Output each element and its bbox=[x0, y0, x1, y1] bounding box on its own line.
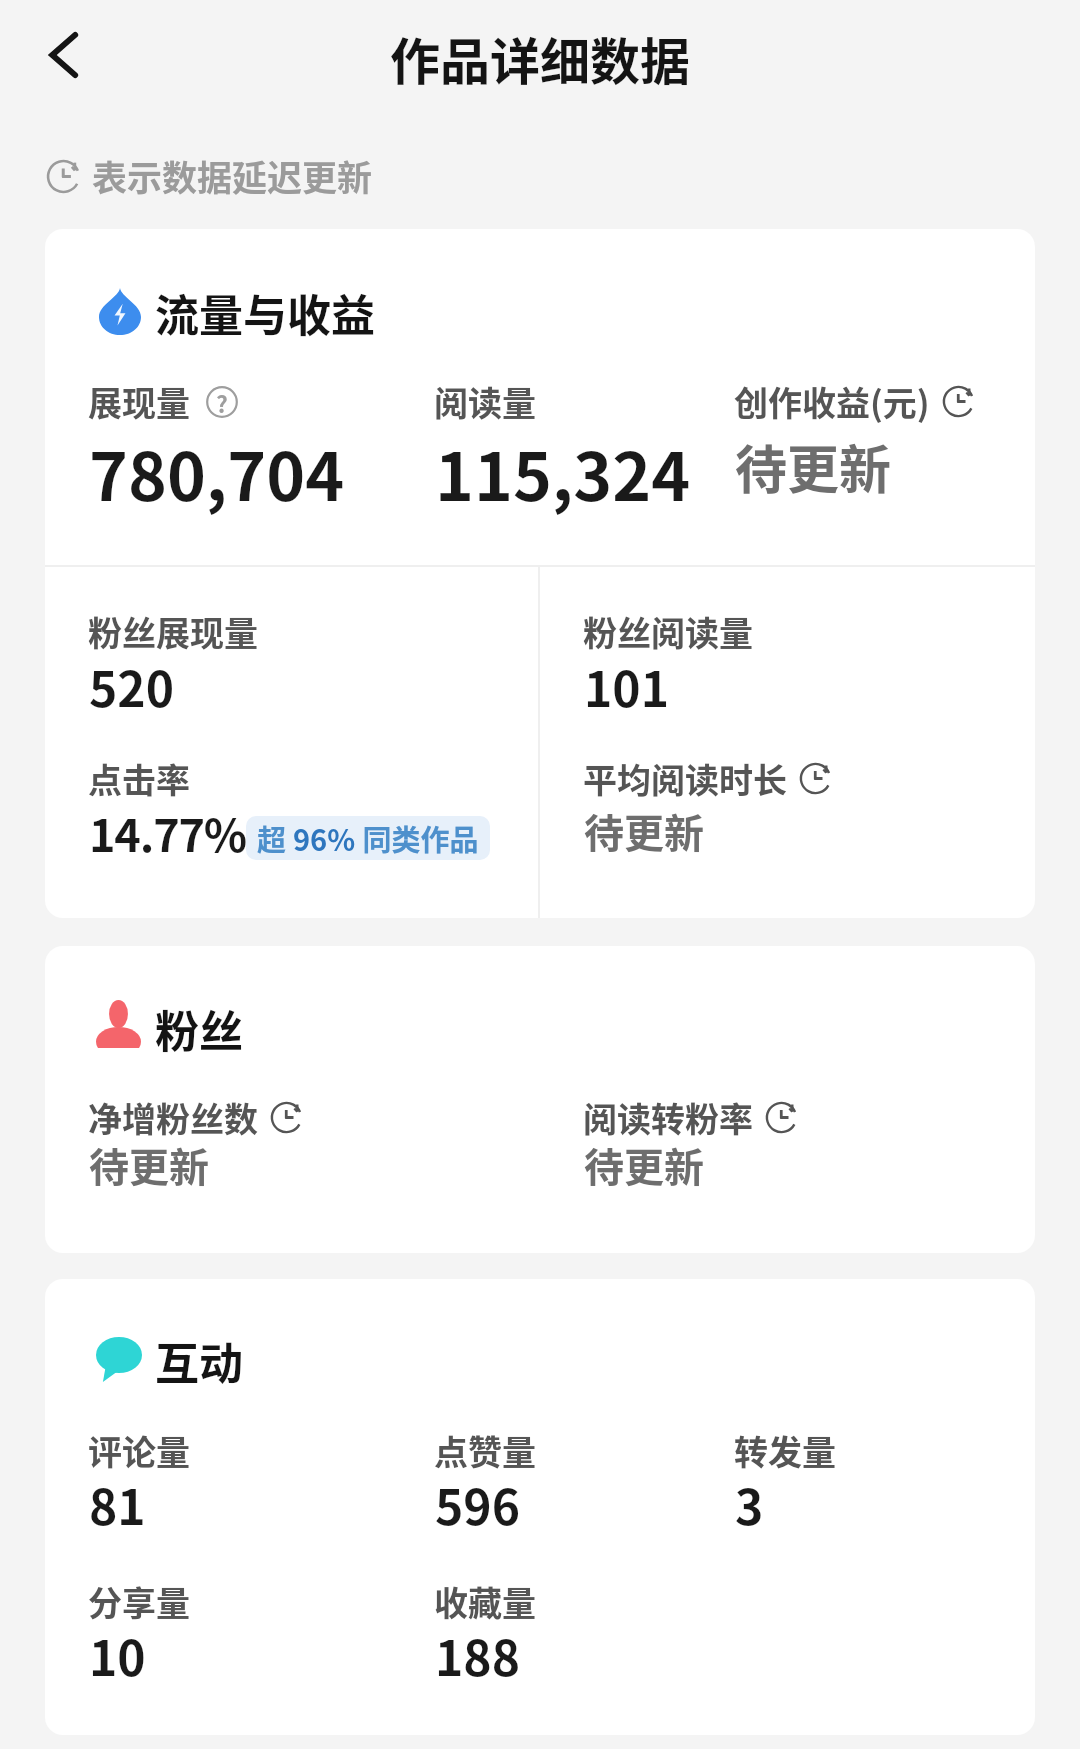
staticText: 14.77% bbox=[89, 800, 246, 865]
staticText: 超 bbox=[257, 817, 293, 859]
staticText: 点赞量 bbox=[434, 1426, 536, 1475]
staticText: 展现量 bbox=[88, 377, 190, 426]
staticText: ? bbox=[216, 386, 228, 418]
button[interactable]: 互动 bbox=[45, 1279, 1035, 1735]
staticText: 101 bbox=[584, 651, 669, 721]
staticText: 96% bbox=[293, 817, 356, 859]
staticText: 10 bbox=[89, 1620, 146, 1690]
staticText: 转发量 bbox=[734, 1426, 836, 1475]
staticText: 780,704 bbox=[89, 424, 345, 520]
staticText: 互动 bbox=[155, 1329, 243, 1393]
staticText: 596 bbox=[435, 1469, 520, 1539]
button[interactable]: 粉丝 bbox=[45, 946, 1035, 1253]
staticText: 待更新 bbox=[584, 802, 704, 860]
staticText: 评论量 bbox=[88, 1426, 190, 1475]
button[interactable]: 流量与收益 bbox=[45, 229, 1035, 918]
staticText: 收藏量 bbox=[434, 1577, 536, 1626]
staticText: 待更新 bbox=[735, 429, 892, 504]
staticText: 平均阅读时长 bbox=[583, 754, 787, 803]
staticText: 净增粉丝数 bbox=[88, 1093, 258, 1142]
staticText: 粉丝阅读量 bbox=[583, 607, 753, 656]
staticText: 流量与收益 bbox=[155, 281, 375, 345]
staticText: 表示数据延迟更新 bbox=[92, 150, 373, 201]
staticText: 同类作品 bbox=[356, 817, 479, 859]
staticText: 粉丝 bbox=[155, 997, 243, 1061]
staticText: 作品详细数据 bbox=[390, 22, 690, 94]
staticText: 待更新 bbox=[89, 1136, 209, 1194]
staticText: 115,324 bbox=[435, 424, 691, 520]
staticText: 阅读量 bbox=[434, 377, 536, 426]
staticText: 点击率 bbox=[88, 754, 190, 803]
staticText: 520 bbox=[89, 651, 174, 721]
staticText: 创作收益(元) bbox=[734, 377, 930, 426]
staticText: 分享量 bbox=[88, 1577, 190, 1626]
staticText: 粉丝展现量 bbox=[88, 607, 258, 656]
button[interactable]: Back bbox=[20, 11, 108, 99]
staticText: 阅读转粉率 bbox=[583, 1093, 753, 1142]
staticText: 待更新 bbox=[584, 1136, 704, 1194]
staticText: 188 bbox=[435, 1620, 520, 1690]
staticText: 3 bbox=[735, 1469, 764, 1539]
staticText: 81 bbox=[89, 1469, 146, 1539]
